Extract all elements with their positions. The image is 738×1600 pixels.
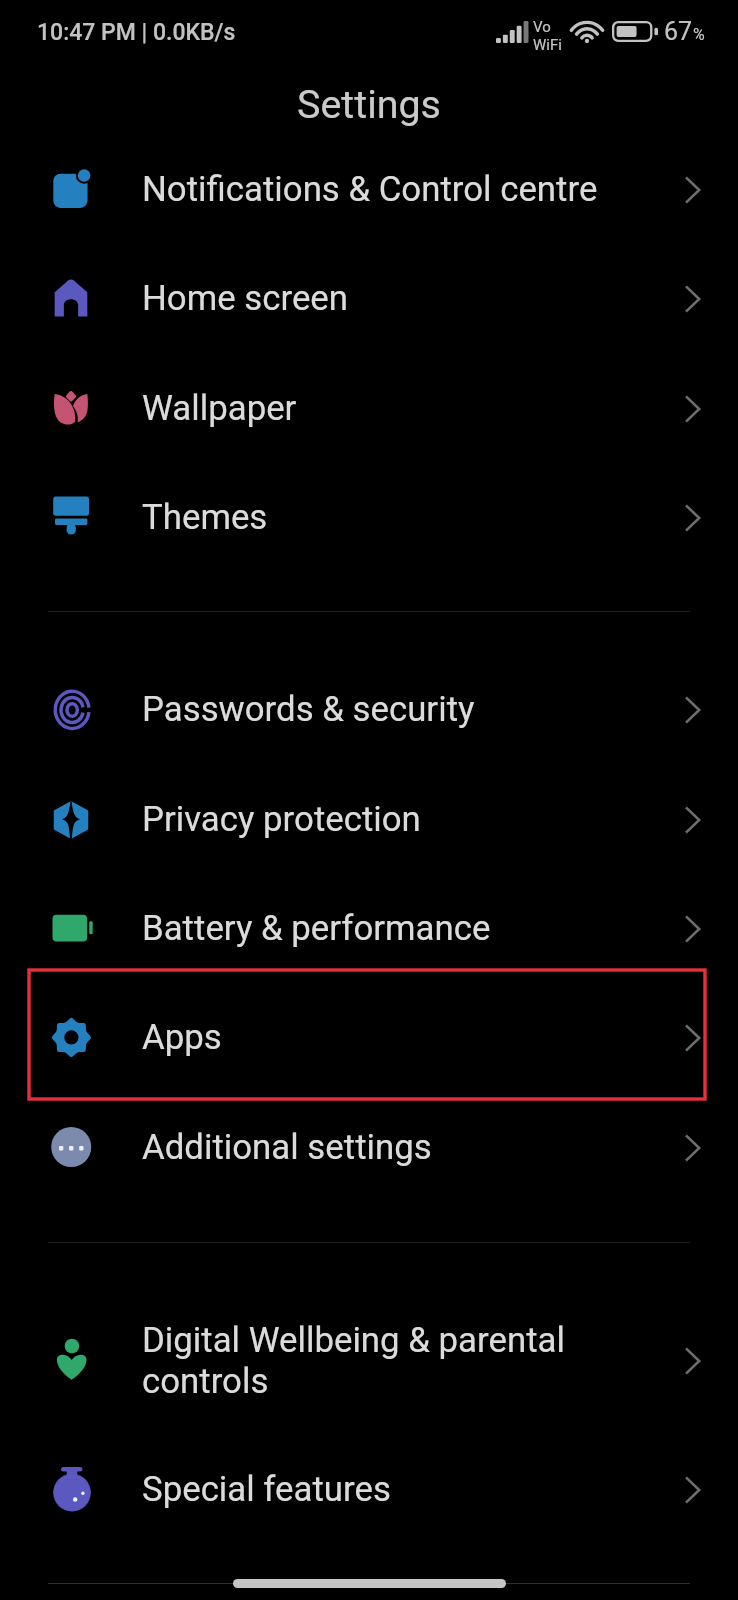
- button[interactable]: Battery & performance: [0, 874, 738, 983]
- other: Notifications: [48, 167, 94, 213]
- button[interactable]: Digital Wellbeing & parental controls: [0, 1306, 738, 1415]
- button[interactable]: Additional settings: [0, 1093, 738, 1202]
- staticText: Digital Wellbeing & parental controls: [142, 1320, 708, 1402]
- staticText: WiFi: [533, 36, 562, 54]
- staticText: Privacy protection: [142, 799, 708, 840]
- staticText: Additional settings: [142, 1127, 708, 1168]
- staticText: Settings: [0, 81, 738, 127]
- button[interactable]: Notifications: [0, 135, 738, 244]
- button[interactable]: Special features: [0, 1435, 738, 1544]
- button[interactable]: Home screen: [0, 244, 738, 353]
- staticText: Passwords & security: [142, 689, 708, 730]
- staticText: 67: [664, 17, 693, 46]
- staticText: %: [693, 25, 705, 44]
- button[interactable]: Themes: [0, 463, 738, 572]
- staticText: Notifications & Control centre: [142, 169, 708, 210]
- staticText: Wallpaper: [142, 388, 708, 429]
- staticText: Vo: [533, 18, 551, 36]
- staticText: 10:47 PM | 0.0KB/s: [37, 19, 236, 46]
- staticText: Special features: [142, 1469, 708, 1510]
- button[interactable]: Privacy protection: [0, 765, 738, 874]
- staticText: Themes: [142, 497, 708, 538]
- staticText: Home screen: [142, 278, 708, 319]
- staticText: Battery & performance: [142, 908, 708, 949]
- button[interactable]: Wallpaper: [0, 354, 738, 463]
- staticText: Apps: [142, 1017, 708, 1058]
- button[interactable]: Passwords & security: [0, 655, 738, 764]
- button[interactable]: Apps: [0, 983, 738, 1092]
